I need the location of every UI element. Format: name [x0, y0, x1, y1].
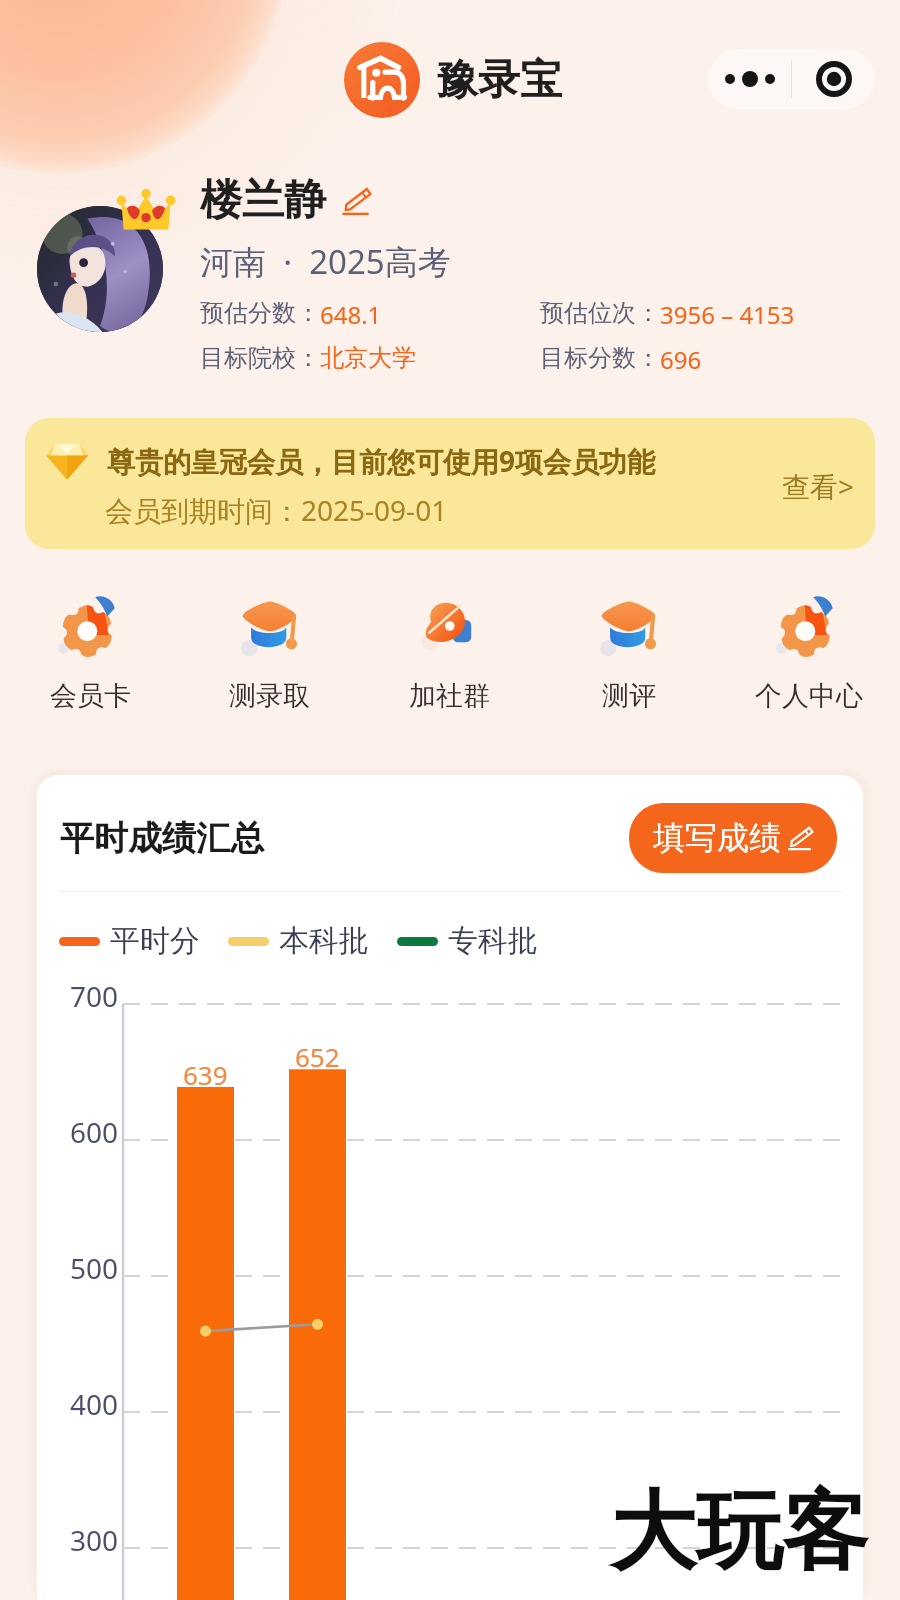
- staticText: 696: [660, 343, 702, 376]
- staticText: 平时分: [110, 922, 200, 960]
- staticText: 400: [70, 1385, 119, 1423]
- button[interactable]: 测录取: [180, 589, 359, 713]
- button[interactable]: More: [708, 49, 791, 109]
- staticText: 本科批: [279, 922, 369, 960]
- button[interactable]: 加社群: [359, 589, 539, 713]
- staticText: 3956 – 4153: [660, 298, 795, 331]
- staticText: 河南 · 2025高考: [200, 239, 451, 284]
- button[interactable]: 个人中心: [719, 589, 899, 713]
- button[interactable]: 测评: [539, 589, 719, 713]
- staticText: 700: [70, 977, 119, 1015]
- staticText: 北京大学: [320, 343, 416, 373]
- staticText: 652: [295, 1039, 340, 1074]
- staticText: 目标院校：: [200, 343, 320, 373]
- staticText: 500: [70, 1249, 119, 1287]
- staticText: 预估分数：: [200, 298, 320, 328]
- staticText: 尊贵的皇冠会员，目前您可使用9项会员功能: [107, 442, 656, 480]
- staticText: 测评: [602, 679, 656, 713]
- staticText: 600: [70, 1113, 119, 1151]
- staticText: 会员到期时间：2025-09-01: [105, 491, 448, 529]
- staticText: 648.1: [320, 298, 382, 331]
- staticText: 平时成绩汇总: [60, 817, 264, 860]
- button[interactable]: Edit name: [340, 185, 372, 217]
- button[interactable]: [37, 206, 163, 332]
- staticText: 639: [183, 1057, 228, 1092]
- staticText: 预估位次：: [540, 298, 660, 328]
- staticText: 测录取: [229, 679, 310, 713]
- button[interactable]: 尊贵的皇冠会员，目前您可使用9项会员功能: [25, 418, 875, 549]
- staticText: 专科批: [448, 922, 538, 960]
- staticText: 楼兰静: [200, 174, 326, 227]
- button[interactable]: 会员卡: [1, 589, 180, 713]
- staticText: 填写成绩: [653, 818, 781, 858]
- staticText: 300: [70, 1521, 119, 1559]
- staticText: 个人中心: [755, 679, 863, 713]
- staticText: 查看>: [782, 467, 855, 505]
- button[interactable]: Close: [792, 49, 875, 109]
- staticText: 加社群: [409, 679, 490, 713]
- staticText: 目标分数：: [540, 343, 660, 373]
- button[interactable]: 填写成绩: [629, 803, 837, 873]
- staticText: 豫录宝: [436, 54, 562, 107]
- staticText: 会员卡: [50, 679, 131, 713]
- staticText: 大玩客: [610, 1478, 868, 1586]
